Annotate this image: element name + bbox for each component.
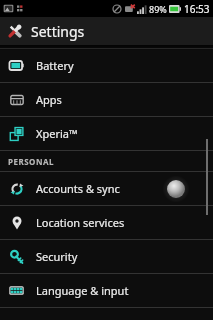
button[interactable]: Location services: [0, 206, 213, 239]
button[interactable]: Language & input: [0, 274, 213, 307]
staticText: Security: [36, 249, 78, 264]
button[interactable]: Apps: [0, 83, 213, 116]
staticText: 16:53: [184, 2, 210, 16]
staticText: Language & input: [36, 283, 129, 298]
staticText: Settings: [31, 22, 85, 41]
staticText: Location services: [36, 215, 125, 230]
staticText: Storage: [36, 25, 77, 40]
staticText: Apps: [36, 92, 62, 107]
button[interactable]: Security: [0, 240, 213, 273]
button[interactable]: Xperia™: [0, 117, 213, 150]
staticText: Battery: [36, 58, 74, 73]
staticText: Accounts & sync: [36, 181, 120, 196]
staticText: PERSONAL: [8, 156, 54, 167]
staticText: 89%: [149, 3, 167, 15]
button[interactable]: Battery: [0, 49, 213, 82]
staticText: Xperia™: [36, 126, 78, 141]
button[interactable]: Storage: [0, 17, 213, 48]
button[interactable]: Accounts & sync: [0, 172, 213, 205]
button[interactable]: Settings: [0, 17, 213, 45]
